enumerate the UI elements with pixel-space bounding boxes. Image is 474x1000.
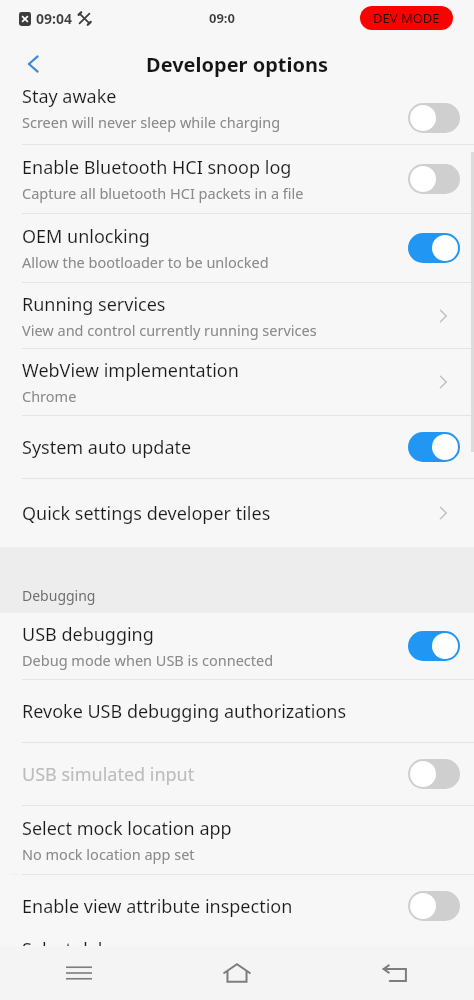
button[interactable]: Enable view attribute inspection <box>0 875 474 937</box>
button[interactable]: Select mock location app <box>0 806 474 874</box>
staticText: Developer options <box>146 51 329 78</box>
staticText: DEV MODE <box>373 9 440 27</box>
staticText: Debug mode when USB is connected <box>22 650 274 670</box>
button[interactable]: Toggle off <box>408 759 460 789</box>
staticText: Enable view attribute inspection <box>22 894 293 919</box>
button[interactable]: OEM unlocking <box>0 214 474 282</box>
staticText: Allow the bootloader to be unlocked <box>22 252 269 272</box>
staticText: Stay awake <box>22 84 117 109</box>
staticText: OEM unlocking <box>22 224 150 249</box>
button[interactable]: Enable Bluetooth HCI snoop log <box>0 145 474 213</box>
button[interactable]: USB simulated input <box>0 743 474 805</box>
staticText: USB simulated input <box>22 762 195 787</box>
staticText: Revoke USB debugging authorizations <box>22 699 347 724</box>
staticText: 09:0 <box>209 9 235 27</box>
button[interactable]: Stay awake <box>0 92 474 144</box>
button[interactable]: DEV MODE <box>360 6 453 30</box>
button[interactable]: Toggle off <box>408 891 460 921</box>
button[interactable]: Open <box>426 496 460 530</box>
staticText: Select debug app <box>22 937 169 946</box>
button[interactable]: USB debugging <box>0 613 474 679</box>
staticText: View and control currently running servi… <box>22 320 317 340</box>
button[interactable]: System auto update <box>0 416 474 478</box>
staticText: No mock location app set <box>22 844 195 864</box>
button[interactable]: Toggle off <box>408 164 460 194</box>
button[interactable]: Quick settings developer tiles <box>0 479 474 547</box>
staticText: 09:04 <box>36 9 72 28</box>
staticText: Debugging <box>22 586 96 605</box>
button[interactable]: Recent apps <box>0 946 158 1000</box>
button[interactable]: Home <box>158 946 316 1000</box>
button[interactable]: Open <box>426 299 460 333</box>
button[interactable]: Select debug app <box>0 937 474 946</box>
button[interactable]: Revoke USB debugging authorizations <box>0 680 474 742</box>
button[interactable]: Back <box>316 946 474 1000</box>
button[interactable]: Toggle on <box>408 631 460 661</box>
staticText: HARDRESET <box>6 823 305 894</box>
staticText: Enable Bluetooth HCI snoop log <box>22 155 292 180</box>
staticText: Capture all bluetooth HCI packets in a f… <box>22 183 304 203</box>
staticText: Running services <box>22 292 166 317</box>
button[interactable]: Toggle off <box>408 103 460 133</box>
button[interactable]: Open <box>426 365 460 399</box>
button[interactable]: Back <box>10 40 58 88</box>
staticText: Screen will never sleep while charging <box>22 112 281 132</box>
staticText: Select mock location app <box>22 816 232 841</box>
staticText: USB debugging <box>22 622 154 647</box>
button[interactable]: WebView implementation <box>0 349 474 415</box>
button[interactable]: Toggle on <box>408 432 460 462</box>
staticText: .INFO <box>397 900 460 930</box>
staticText: Chrome <box>22 386 77 406</box>
button[interactable]: Running services <box>0 283 474 348</box>
staticText: System auto update <box>22 435 192 460</box>
staticText: WebView implementation <box>22 358 239 383</box>
button[interactable]: Toggle on <box>408 233 460 263</box>
staticText: Quick settings developer tiles <box>22 501 271 526</box>
